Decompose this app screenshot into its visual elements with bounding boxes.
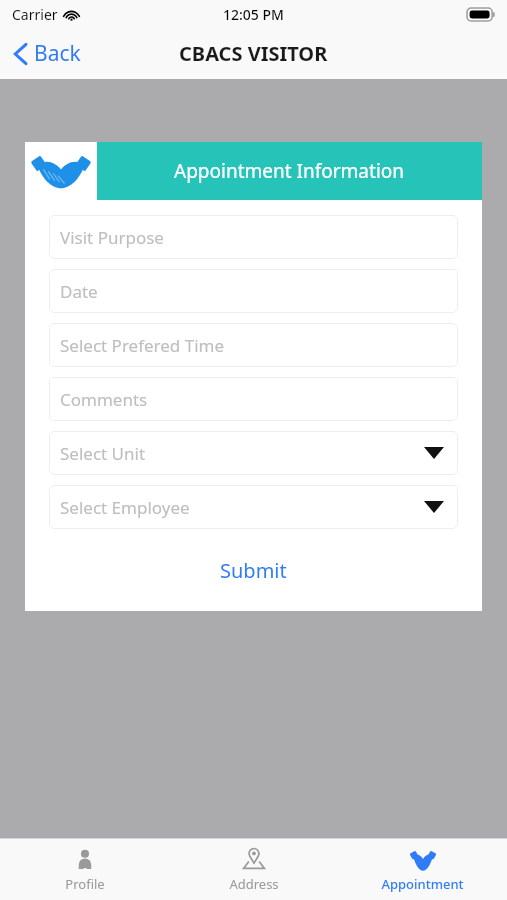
button[interactable]: Select Prefered Time: [49, 323, 458, 367]
staticText: Comments: [60, 388, 444, 411]
staticText: CBACS VISITOR: [179, 40, 328, 67]
button[interactable]: Profile: [0, 839, 169, 900]
staticText: Date: [60, 280, 444, 303]
button[interactable]: Submit: [198, 549, 309, 592]
staticText: Profile: [65, 875, 105, 893]
staticText: Carrier: [12, 5, 58, 24]
staticText: Visit Purpose: [60, 226, 444, 249]
staticText: Select Employee: [60, 496, 424, 519]
button[interactable]: Address: [169, 839, 338, 900]
button[interactable]: Back: [0, 28, 95, 79]
button[interactable]: Date: [49, 269, 458, 313]
staticText: Back: [34, 39, 81, 68]
staticText: Submit: [220, 557, 287, 584]
button[interactable]: Appointment: [338, 839, 507, 900]
button[interactable]: Select Employee: [49, 485, 458, 529]
button[interactable]: Visit Purpose: [49, 215, 458, 259]
staticText: Address: [229, 875, 279, 893]
staticText: Select Prefered Time: [60, 334, 444, 357]
staticText: Select Unit: [60, 442, 424, 465]
button[interactable]: Comments: [49, 377, 458, 421]
button[interactable]: Select Unit: [49, 431, 458, 475]
staticText: Appointment: [381, 875, 464, 893]
staticText: Appointment Information: [174, 158, 405, 184]
staticText: 12:05 PM: [223, 5, 284, 24]
